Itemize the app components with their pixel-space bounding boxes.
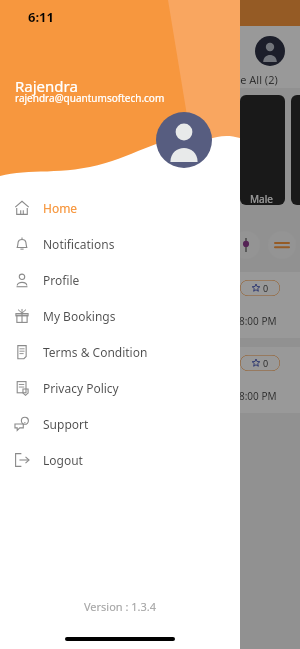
staticText: Notifications (43, 236, 115, 252)
button[interactable]: Home (0, 190, 240, 226)
staticText: rajendra@quantumsoftech.com (15, 91, 165, 105)
button[interactable]: Notifications (0, 226, 240, 262)
staticText: Profile (43, 272, 80, 288)
button[interactable]: Profile photo (156, 112, 212, 168)
button[interactable]: Profile (0, 262, 240, 298)
staticText: 0 (263, 282, 269, 294)
staticText: Terms & Condition (43, 344, 148, 360)
staticText: See All (2) (228, 72, 278, 87)
button[interactable]: Terms & Condition (0, 334, 240, 370)
staticText: Male (250, 192, 273, 206)
staticText: 0 (263, 357, 269, 369)
staticText: 6:11 (28, 8, 54, 26)
button[interactable]: My Bookings (0, 298, 240, 334)
button[interactable]: Privacy Policy (0, 370, 240, 406)
button[interactable]: Logout (0, 442, 240, 478)
staticText: Version : 1.3.4 (0, 599, 240, 614)
staticText: Home (43, 200, 78, 216)
staticText: -08:00 PM (230, 314, 277, 328)
staticText: My Bookings (43, 308, 116, 324)
staticText: Rajendra (15, 76, 78, 96)
button[interactable]: Support (0, 406, 240, 442)
staticText: Logout (43, 452, 83, 468)
staticText: Privacy Policy (43, 380, 119, 396)
staticText: -08:00 PM (230, 389, 277, 403)
staticText: Support (43, 416, 89, 432)
